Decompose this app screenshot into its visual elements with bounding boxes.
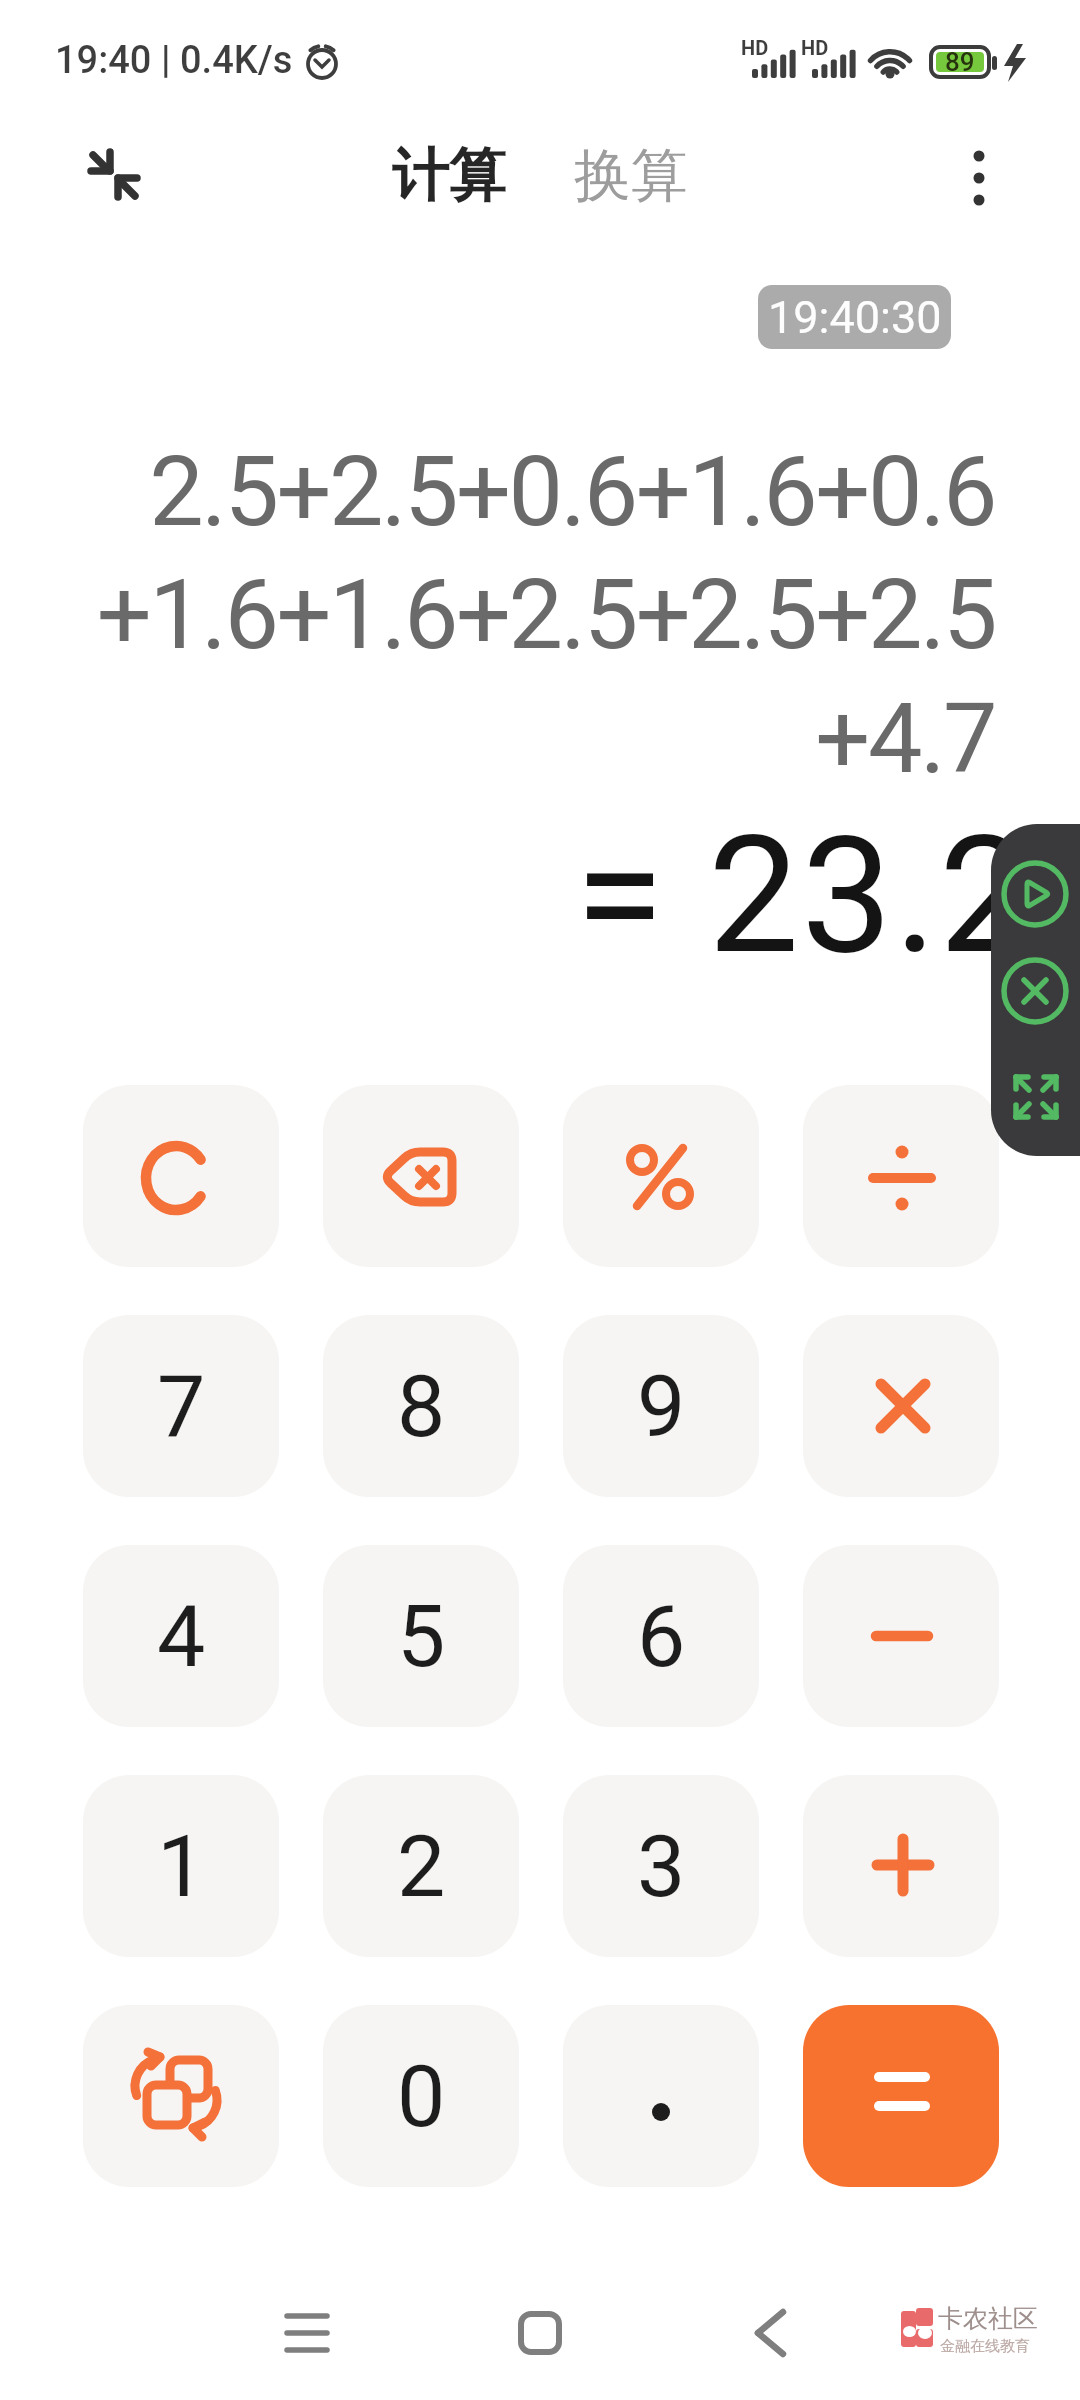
button[interactable] — [563, 1085, 759, 1267]
button[interactable] — [70, 130, 160, 220]
button[interactable]: 9 — [563, 1315, 759, 1497]
button[interactable] — [803, 2005, 999, 2187]
button[interactable]: 1 — [83, 1775, 279, 1957]
button[interactable]: 4 — [83, 1545, 279, 1727]
button[interactable] — [997, 953, 1073, 1029]
button[interactable] — [730, 2293, 810, 2373]
staticText: 金融在线教育 — [940, 2337, 1030, 2356]
button[interactable]: 6 — [563, 1545, 759, 1727]
button[interactable] — [500, 2293, 580, 2373]
button[interactable] — [803, 1315, 999, 1497]
button[interactable] — [991, 824, 1080, 1156]
button[interactable] — [563, 2005, 759, 2187]
button[interactable] — [997, 1059, 1073, 1135]
staticText: 5 — [397, 1586, 446, 1687]
staticText: 9 — [637, 1356, 686, 1457]
staticText: 6 — [637, 1586, 686, 1687]
staticText: 3 — [637, 1816, 686, 1917]
button[interactable] — [803, 1775, 999, 1957]
button[interactable] — [949, 145, 1009, 233]
button[interactable]: 2 — [323, 1775, 519, 1957]
staticText: 2.5+2.5+0.6+1.6+0.6 — [0, 435, 995, 549]
staticText: 0 — [397, 2046, 446, 2147]
staticText: 89 — [945, 47, 975, 77]
staticText: 卡农社区 — [938, 2303, 1038, 2334]
button[interactable] — [83, 1085, 279, 1267]
button[interactable] — [267, 2293, 347, 2373]
staticText: HD — [801, 36, 829, 59]
button[interactable]: 3 — [563, 1775, 759, 1957]
button[interactable] — [803, 1545, 999, 1727]
staticText: HD — [741, 36, 769, 59]
button[interactable] — [997, 856, 1073, 932]
staticText: +1.6+1.6+2.5+2.5+2.5 — [0, 558, 995, 672]
button[interactable]: 5 — [323, 1545, 519, 1727]
staticText: = 23.2 — [575, 801, 1032, 991]
button[interactable]: 7 — [83, 1315, 279, 1497]
button[interactable]: 换算 — [574, 140, 688, 212]
staticText: 4 — [157, 1586, 206, 1687]
staticText: 19:40:30 — [768, 291, 942, 344]
staticText: 19:40 | 0.4K/s — [55, 38, 293, 83]
staticText: 1 — [157, 1816, 206, 1917]
button[interactable]: 0 — [323, 2005, 519, 2187]
staticText: 8 — [397, 1356, 446, 1457]
button[interactable] — [83, 2005, 279, 2187]
button[interactable] — [323, 1085, 519, 1267]
staticText: 7 — [157, 1356, 206, 1457]
button[interactable]: 8 — [323, 1315, 519, 1497]
button[interactable]: 计算 — [392, 140, 506, 212]
staticText: 2 — [397, 1816, 446, 1917]
staticText: +4.7 — [0, 682, 995, 796]
button[interactable] — [803, 1085, 999, 1267]
